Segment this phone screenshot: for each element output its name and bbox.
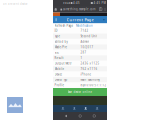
staticText: Save device online [67,90,92,94]
staticText: VoLTE [63,1,70,5]
staticText: 8@10:00:51:1:12 [80,83,106,87]
staticText: ID [55,29,58,32]
button[interactable]: Search [73,107,76,110]
staticText: Device [55,73,63,76]
staticText: Main Taxonomy [80,78,99,81]
button[interactable]: Recent apps [93,115,95,117]
staticText: Current Page [66,17,93,22]
button[interactable]: Home [54,8,57,11]
staticText: Edited by [55,40,68,43]
button[interactable]: Modification [76,24,93,27]
staticText: 4:45 PM [94,1,106,5]
staticText: 7142 [80,29,88,32]
staticText: Made/Pre [55,45,68,49]
staticText: 1 [80,56,82,60]
staticText: iPhone [80,73,91,76]
staticText: Type [55,34,61,38]
staticText: something.example.com [63,7,95,11]
staticText: Second Unit [80,34,97,38]
staticText: 10/2017 [80,45,93,49]
button[interactable]: Back [65,115,67,117]
staticText: Modification [76,24,93,27]
staticText: 762 x 1116 [80,67,97,71]
button[interactable]: Refresh Page [55,24,74,27]
button[interactable]: Account [102,18,106,22]
button[interactable]: something.example.com [63,7,95,11]
staticText: 287 [80,51,86,54]
staticText: Output Metr [55,62,72,65]
staticText: Result [55,56,64,60]
button[interactable]: Alerts [84,107,87,110]
staticText: Admin [80,40,89,43]
button[interactable]: Profile [96,107,99,110]
button[interactable]: Home [61,107,64,110]
button[interactable]: Menu [54,18,58,22]
button[interactable]: Save device online [53,88,107,96]
staticText: 2436 x 1125 [80,62,99,65]
button[interactable]: Tabs [99,8,102,11]
staticText: on a recent device [3,2,28,6]
staticText: 3 [100,7,102,11]
staticText: 4:45 [73,1,80,5]
button[interactable]: Home [79,115,81,117]
staticText: Size [55,51,60,54]
staticText: Mobile [55,67,65,71]
staticText: Device Typ [55,78,68,81]
staticText: Refresh Page [55,24,74,27]
staticText: Profile [55,83,65,87]
